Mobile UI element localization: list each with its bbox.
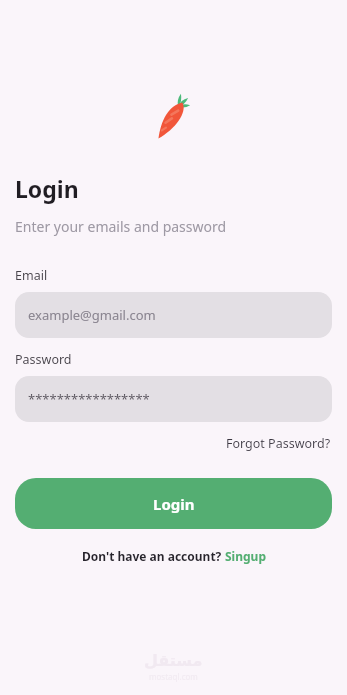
staticText: *****************: [28, 390, 150, 408]
staticText: Singup: [225, 548, 266, 564]
staticText: مستقل: [144, 651, 203, 670]
staticText: Login: [15, 173, 79, 204]
button[interactable]: Email input: [15, 292, 332, 338]
staticText: Password: [15, 351, 72, 368]
staticText: Forgot Password?: [226, 435, 331, 452]
staticText: Enter your emails and password: [15, 217, 227, 236]
button[interactable]: Password input: [15, 376, 332, 422]
staticText: example@gmail.com: [28, 306, 156, 324]
button[interactable]: Forgot Password?: [210, 431, 347, 456]
button[interactable]: Login: [15, 478, 332, 529]
button[interactable]: Singup: [225, 548, 266, 564]
staticText: mostaql.com: [149, 671, 198, 682]
staticText: Email: [15, 267, 48, 284]
staticText: Don't have an account?: [82, 548, 225, 564]
other: Carrot logo: [153, 92, 195, 140]
staticText: Login: [153, 494, 195, 514]
